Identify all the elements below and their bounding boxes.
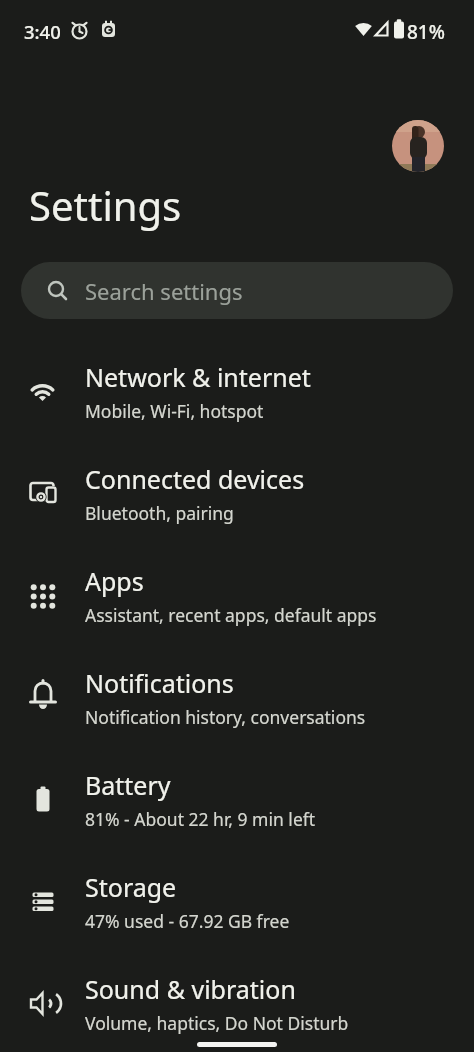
staticText: Battery: [85, 768, 171, 802]
staticText: Network & internet: [85, 360, 311, 394]
staticText: Bluetooth, pairing: [85, 501, 234, 525]
staticText: Apps: [85, 564, 144, 598]
button[interactable]: Storage: [0, 850, 474, 952]
staticText: Notification history, conversations: [85, 705, 366, 729]
staticText: 81%: [407, 19, 445, 45]
staticText: Mobile, Wi-Fi, hotspot: [85, 399, 264, 423]
button[interactable]: Network & internet: [0, 340, 474, 442]
staticText: 47% used - 67.92 GB free: [85, 909, 290, 933]
button[interactable]: Battery: [0, 748, 474, 850]
button[interactable]: [392, 120, 444, 172]
staticText: Assistant, recent apps, default apps: [85, 603, 377, 627]
staticText: Settings: [29, 178, 182, 232]
staticText: Connected devices: [85, 462, 305, 496]
staticText: Storage: [85, 870, 177, 904]
staticText: 3:40: [24, 19, 61, 44]
button[interactable]: Connected devices: [0, 442, 474, 544]
staticText: Notifications: [85, 666, 234, 700]
button[interactable]: Sound & vibration: [0, 952, 474, 1052]
button[interactable]: Search settings: [21, 262, 453, 319]
button[interactable]: Apps: [0, 544, 474, 646]
button[interactable]: Notifications: [0, 646, 474, 748]
staticText: 81% - About 22 hr, 9 min left: [85, 807, 316, 831]
staticText: Sound & vibration: [85, 972, 296, 1006]
staticText: Search settings: [85, 276, 243, 306]
staticText: Volume, haptics, Do Not Disturb: [85, 1011, 349, 1035]
